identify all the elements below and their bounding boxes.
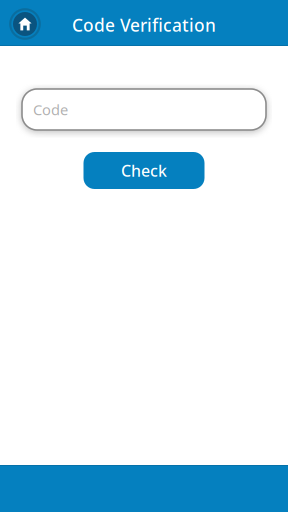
button[interactable]: Code	[22, 89, 266, 130]
button[interactable]: Check	[83, 152, 204, 189]
button[interactable]: Home	[8, 7, 42, 41]
staticText: Check	[121, 160, 167, 181]
staticText: Code Verification	[72, 13, 216, 36]
staticText: Code	[33, 100, 68, 119]
